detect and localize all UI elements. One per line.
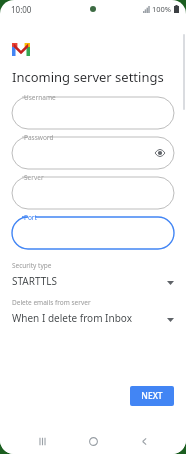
staticText: Delete emails from server — [12, 298, 91, 307]
staticText: Security type — [12, 261, 52, 270]
button[interactable]: Security type — [12, 261, 174, 288]
staticText: 10:00 — [11, 4, 32, 15]
button[interactable]: Home — [84, 432, 102, 450]
staticText: Server — [24, 173, 44, 182]
staticText: Password — [24, 133, 54, 142]
button[interactable]: Back — [135, 432, 153, 450]
button[interactable]: Username — [12, 97, 174, 129]
button[interactable]: Delete emails from server — [12, 298, 174, 325]
staticText: NEXT — [141, 390, 163, 402]
staticText: Incoming server settings — [12, 68, 164, 86]
button[interactable]: Password — [12, 137, 174, 169]
staticText: Port — [24, 213, 37, 222]
staticText: 100% — [152, 4, 172, 14]
staticText: Username — [24, 93, 56, 102]
button[interactable]: NEXT — [130, 386, 174, 406]
button[interactable]: Server — [12, 177, 174, 209]
staticText: STARTTLS — [12, 274, 58, 288]
button[interactable]: Port — [12, 217, 174, 249]
button[interactable]: Show password — [154, 147, 166, 159]
button[interactable]: Recent apps — [33, 432, 51, 450]
staticText: When I delete from Inbox — [12, 311, 132, 325]
